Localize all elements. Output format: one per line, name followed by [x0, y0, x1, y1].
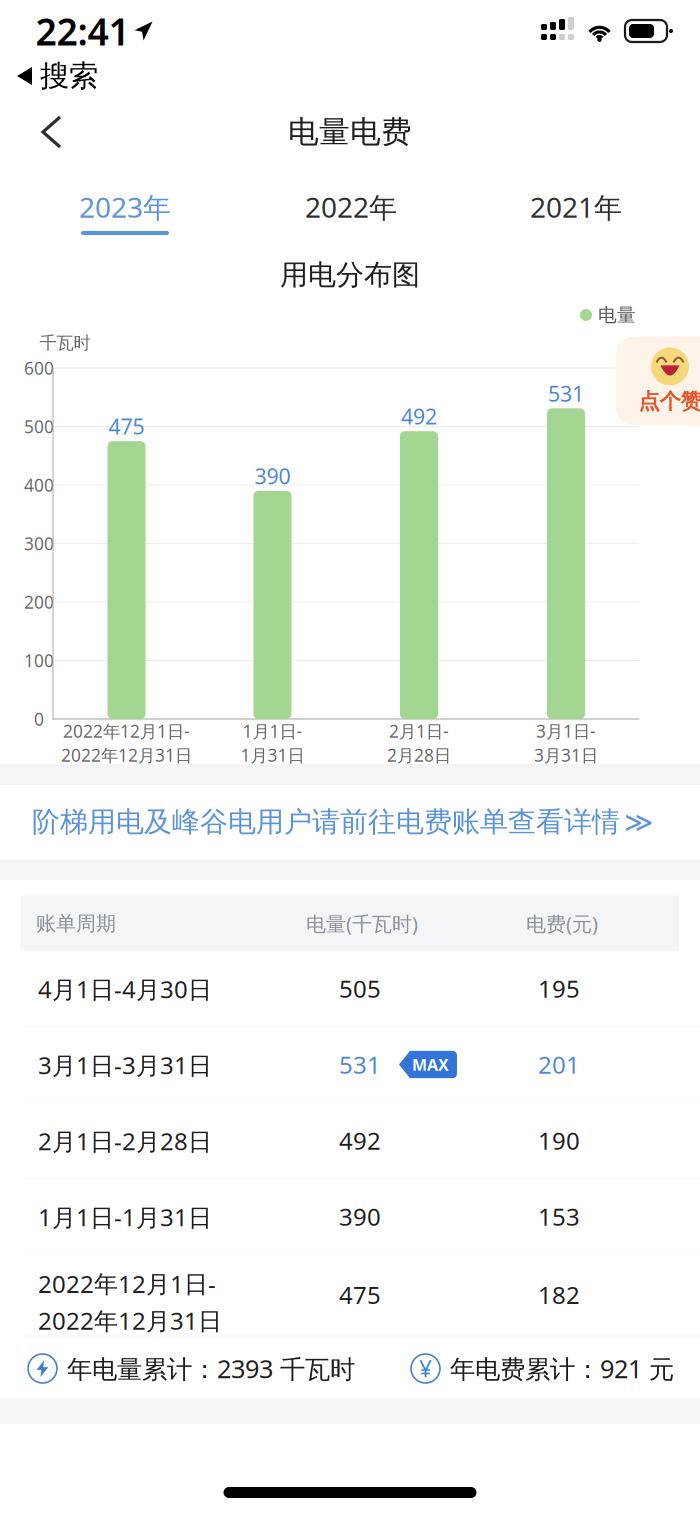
staticText: 201 — [538, 1049, 580, 1080]
staticText: 搜索 — [40, 58, 98, 94]
staticText: 2月28日 — [387, 743, 451, 766]
staticText: MAX — [412, 1054, 449, 1075]
staticText: 1月1日- — [242, 719, 302, 742]
staticText: 475 — [108, 412, 144, 440]
staticText: 2022年12月1日- — [38, 1268, 216, 1299]
staticText: 492 — [401, 402, 437, 430]
button[interactable]: 2022年 — [251, 170, 451, 250]
staticText: 505 — [339, 973, 381, 1004]
staticText: 492 — [339, 1125, 381, 1156]
staticText: 600 — [24, 356, 54, 379]
staticText: 500 — [24, 415, 54, 438]
staticText: 300 — [24, 532, 54, 555]
staticText: 22:41 — [35, 6, 129, 56]
staticText: 账单周期 — [36, 911, 116, 936]
button[interactable]: 点个赞 — [616, 336, 700, 425]
staticText: 3月31日 — [534, 743, 598, 766]
staticText: 3月1日-3月31日 — [38, 1049, 212, 1081]
button[interactable]: 2021年 — [476, 170, 676, 250]
staticText: 2月1日- — [389, 719, 449, 742]
staticText: 年电费累计：921 元 — [450, 1352, 674, 1385]
staticText: 531 — [548, 379, 584, 407]
staticText: 1月31日 — [240, 743, 304, 766]
staticText: 195 — [538, 973, 580, 1004]
staticText: 阶梯用电及峰谷电用户请前往电费账单查看详情 — [32, 805, 620, 839]
staticText: 点个赞 — [638, 388, 700, 415]
staticText: 100 — [24, 649, 54, 672]
staticText: 182 — [538, 1279, 580, 1311]
button[interactable]: Back — [0, 97, 86, 167]
staticText: 电费(元) — [526, 910, 598, 937]
staticText: 2022年12月31日 — [61, 743, 192, 766]
staticText: 531 — [339, 1049, 381, 1080]
staticText: 3月1日- — [536, 719, 596, 742]
staticText: 4月1日-4月30日 — [38, 973, 212, 1005]
staticText: 电量电费 — [288, 113, 412, 151]
staticText: 1月1日-1月31日 — [38, 1201, 212, 1233]
button[interactable]: 阶梯用电及峰谷电用户请前往电费账单查看详情 — [0, 785, 700, 859]
staticText: 电量(千瓦时) — [306, 910, 418, 937]
staticText: 153 — [538, 1201, 580, 1232]
staticText: 2023年 — [79, 188, 171, 226]
staticText: 400 — [24, 473, 54, 496]
staticText: 电量 — [598, 303, 636, 326]
staticText: 年电量累计：2393 千瓦时 — [67, 1352, 355, 1385]
staticText: 千瓦时 — [39, 332, 90, 354]
staticText: ≫ — [624, 806, 653, 838]
staticText: 2022年12月31日 — [38, 1304, 222, 1336]
staticText: 2022年12月1日- — [63, 719, 190, 742]
staticText: 390 — [339, 1201, 381, 1232]
staticText: 390 — [254, 462, 290, 490]
staticText: 2022年 — [305, 188, 397, 226]
staticText: 0 — [34, 707, 44, 730]
staticText: 475 — [339, 1279, 381, 1311]
button[interactable]: 2023年 — [25, 170, 225, 250]
staticText: 200 — [24, 590, 54, 613]
staticText: 2021年 — [530, 188, 622, 226]
staticText: 2月1日-2月28日 — [38, 1125, 212, 1157]
staticText: 用电分布图 — [280, 258, 420, 292]
staticText: ¥ — [419, 1353, 432, 1383]
staticText: 190 — [538, 1125, 580, 1156]
